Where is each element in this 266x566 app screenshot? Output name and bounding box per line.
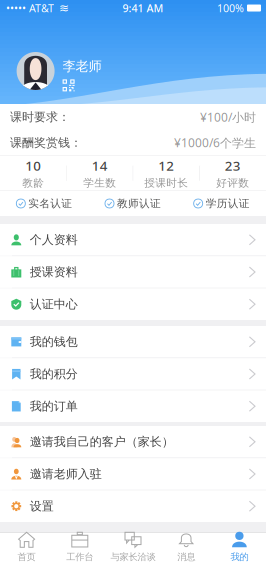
staticText: 好评数 (216, 176, 249, 190)
staticText: 教师认证 (117, 197, 161, 210)
staticText: 学生数 (83, 176, 116, 190)
staticText: 我的 (230, 551, 248, 563)
staticText: ¥1000/6个学生 (174, 135, 256, 151)
staticText: 9:41 AM (122, 1, 163, 15)
staticText: 学历认证 (206, 197, 250, 210)
button[interactable]: 认证中心 (0, 288, 266, 320)
staticText: 工作台 (66, 551, 93, 563)
staticText: ••••• (6, 1, 26, 15)
staticText: 授课资料 (30, 265, 78, 279)
button[interactable]: 我的积分 (0, 358, 266, 390)
staticText: 12 (158, 157, 174, 174)
staticText: 李老师 (63, 58, 102, 74)
staticText: 设置 (30, 499, 54, 513)
staticText: 10 (25, 157, 41, 174)
staticText: 23 (225, 157, 241, 174)
button[interactable]: 与家长洽谈 (106, 533, 160, 566)
button[interactable]: 消息 (160, 533, 213, 566)
staticText: 我的订单 (30, 399, 78, 413)
button[interactable]: 工作台 (53, 533, 106, 566)
staticText: ¥100/小时 (200, 109, 256, 125)
staticText: 首页 (18, 551, 36, 563)
staticText: AT&T (29, 1, 54, 15)
staticText: 邀请我自己的客户（家长） (30, 434, 174, 449)
staticText: 个人资料 (30, 232, 78, 247)
staticText: 实名认证 (28, 197, 72, 210)
button[interactable]: 我的 (213, 533, 266, 566)
button[interactable]: 授课资料 (0, 256, 266, 288)
button[interactable]: 首页 (0, 533, 53, 566)
staticText: 消息 (177, 551, 195, 563)
staticText: 授课时长 (144, 176, 188, 190)
staticText: 认证中心 (30, 297, 78, 311)
button[interactable]: 邀请老师入驻 (0, 458, 266, 490)
staticText: 课酬奖赏钱： (10, 135, 82, 150)
staticText: 我的积分 (30, 367, 78, 381)
staticText: 100% (217, 1, 244, 15)
staticText: 14 (92, 157, 108, 174)
staticText: 我的钱包 (30, 334, 78, 349)
button[interactable]: 设置 (0, 490, 266, 522)
staticText: 与家长洽谈 (110, 551, 155, 563)
staticText: 课时要求： (10, 110, 70, 124)
staticText: 邀请老师入驻 (30, 467, 102, 481)
staticText: 教龄 (22, 176, 44, 190)
button[interactable]: 个人资料 (0, 224, 266, 256)
button[interactable]: 邀请我自己的客户（家长） (0, 426, 266, 458)
staticText: ≋ (59, 1, 69, 15)
button[interactable]: 我的钱包 (0, 326, 266, 358)
button[interactable]: 我的订单 (0, 390, 266, 422)
